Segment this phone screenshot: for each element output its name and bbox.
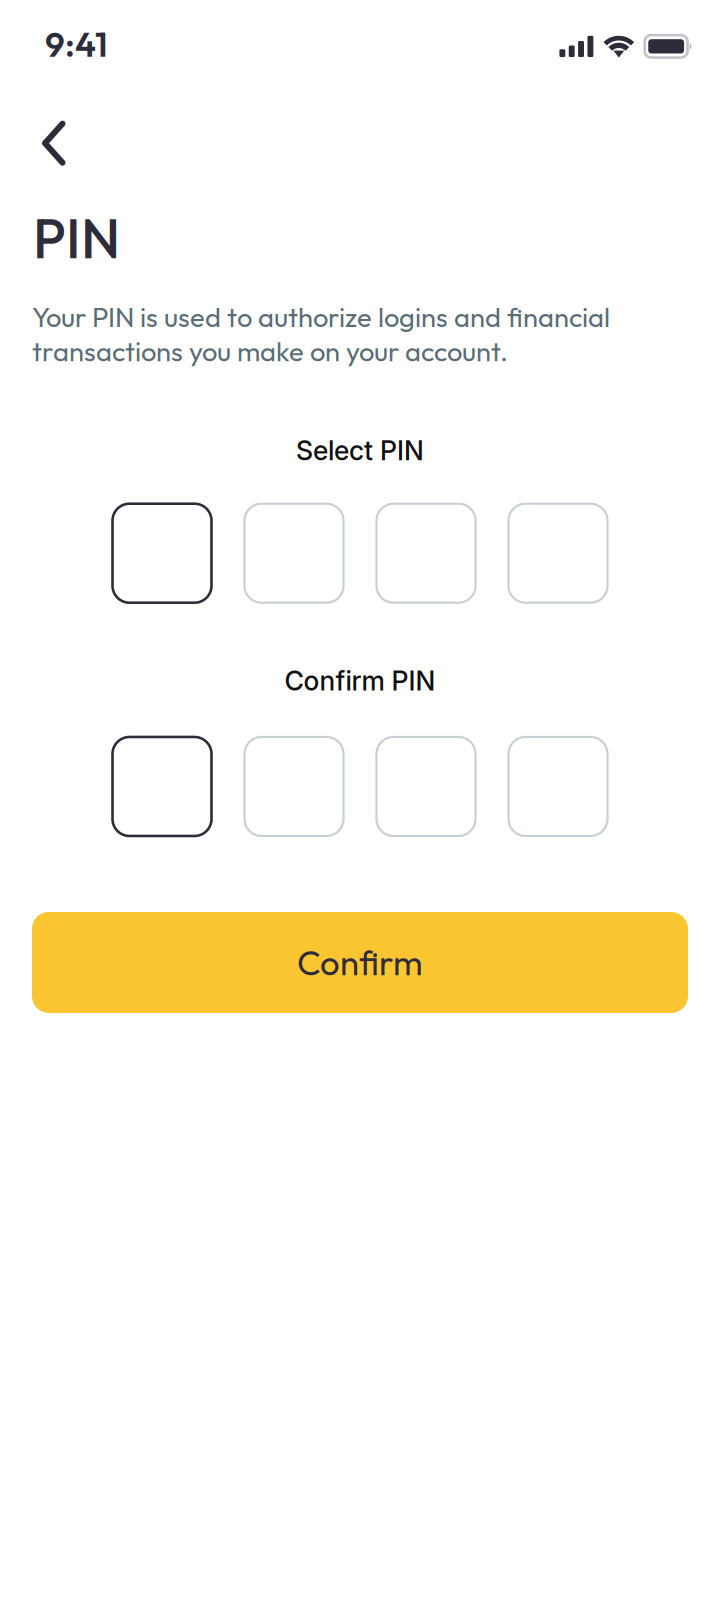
button[interactable]: Confirm (32, 912, 688, 1013)
button[interactable]: Back (0, 111, 98, 176)
staticText: Select PIN (296, 434, 424, 467)
staticText: Confirm PIN (284, 665, 435, 697)
staticText: PIN (33, 204, 120, 273)
staticText: Your PIN is used to authorize logins and… (32, 300, 610, 368)
staticText: 9:41 (45, 22, 108, 66)
staticText: Confirm (297, 941, 423, 984)
